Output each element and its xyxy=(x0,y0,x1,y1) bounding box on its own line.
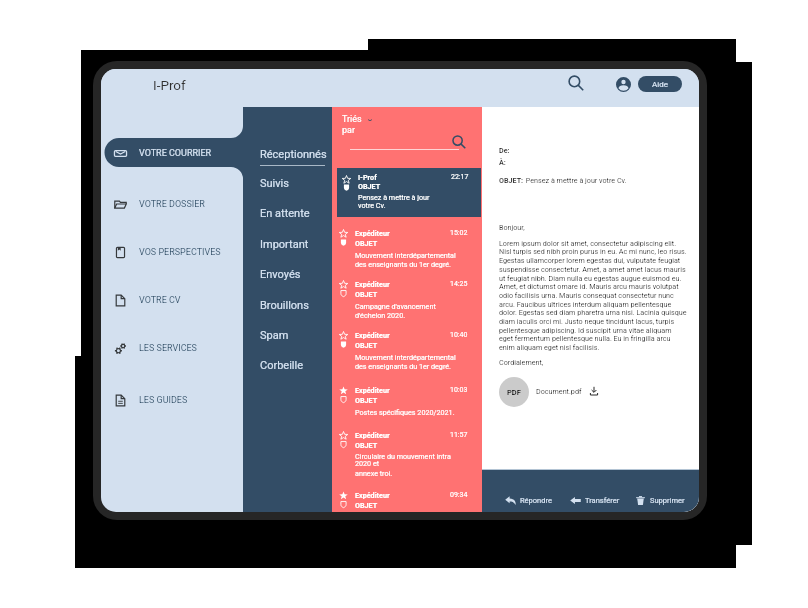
staticText: Réceptionnés xyxy=(260,148,327,161)
staticText: Postes spécifiques 2020/2021. xyxy=(355,408,455,416)
staticText: Important xyxy=(260,238,309,251)
staticText: VOTRE COURRIER xyxy=(139,148,212,159)
staticText: arcu. Faucibus ultrices interdum aliquam… xyxy=(499,300,672,308)
staticText: eget fermentum pellentesque nulla. Eu in… xyxy=(499,334,671,342)
staticText: LES GUIDES xyxy=(139,395,188,406)
button[interactable]: Triés xyxy=(340,112,376,136)
staticText: Suivis xyxy=(260,177,289,190)
button[interactable]: Expéditeur xyxy=(332,386,483,420)
button[interactable]: Expéditeur xyxy=(332,229,483,272)
staticText: Lorem ipsum dolor sit amet, consectetur … xyxy=(499,239,677,247)
staticText: diam iaculis orci mi. Justo neque tincid… xyxy=(499,317,675,325)
staticText: Document.pdf xyxy=(536,387,582,395)
staticText: d'échelon 2020. xyxy=(355,311,406,319)
button[interactable]: Brouillons xyxy=(243,290,332,320)
button[interactable]: Compte xyxy=(611,72,635,96)
button[interactable]: Rechercher xyxy=(564,71,588,95)
button[interactable]: Expéditeur xyxy=(332,280,483,323)
staticText: OBJET xyxy=(355,341,378,349)
button[interactable]: Expéditeur xyxy=(332,431,483,481)
staticText: pellentesque adipiscing. Id suscipit urn… xyxy=(499,326,672,334)
staticText: 09:34 xyxy=(450,491,468,499)
button[interactable]: Expéditeur xyxy=(332,491,483,512)
staticText: Aide xyxy=(652,80,668,89)
button[interactable]: Corbeille xyxy=(243,350,332,380)
staticText: LES SERVICES xyxy=(139,343,197,354)
staticText: Mouvement interdépartemental xyxy=(355,251,456,259)
button[interactable]: VOTRE DOSSIER xyxy=(105,190,243,219)
staticText: ut feugiat nibh. Diam nulla eu egestas a… xyxy=(499,274,682,282)
staticText: 22:17 xyxy=(451,173,469,181)
staticText: 14:25 xyxy=(450,280,468,288)
staticText: Brouillons xyxy=(260,299,309,312)
staticText: De: xyxy=(499,146,510,154)
staticText: OBJET xyxy=(355,290,378,298)
staticText: OBJET xyxy=(355,501,378,509)
staticText: 10:03 xyxy=(450,386,468,394)
staticText: Egestas ullamcorper lorem egestas dui, v… xyxy=(499,256,681,264)
button[interactable]: LES SERVICES xyxy=(105,334,243,363)
button[interactable]: En attente xyxy=(243,198,332,228)
staticText: OBJET xyxy=(358,182,381,190)
staticText: Expéditeur xyxy=(355,491,390,499)
button[interactable]: Supprimer xyxy=(635,490,685,510)
staticText: Triés xyxy=(342,114,362,125)
button[interactable]: Envoyés xyxy=(243,259,332,289)
staticText: VOTRE DOSSIER xyxy=(139,199,205,210)
button[interactable]: Télécharger xyxy=(584,381,604,401)
staticText: Campagne d'avancement xyxy=(355,302,436,310)
staticText: 2020 et xyxy=(355,459,380,467)
button[interactable]: Transférer xyxy=(570,490,620,510)
button[interactable]: VOTRE COURRIER xyxy=(105,139,243,168)
button[interactable]: LES GUIDES xyxy=(105,386,243,415)
button[interactable]: Suivis xyxy=(243,168,332,198)
button[interactable]: Important xyxy=(243,229,332,259)
button[interactable]: Aide xyxy=(638,76,682,92)
staticText: Expéditeur xyxy=(355,431,390,439)
button[interactable]: Rechercher un message xyxy=(448,131,468,151)
staticText: Cordialement, xyxy=(499,358,544,366)
staticText: I-Prof xyxy=(358,173,377,181)
staticText: enim aliquam eget nisl facilisis. xyxy=(499,343,600,351)
button[interactable]: I-Prof xyxy=(337,168,481,217)
staticText: annexe troi. xyxy=(355,469,393,477)
staticText: VOTRE CV xyxy=(139,295,181,306)
staticText: votre Cv. xyxy=(358,201,386,209)
staticText: I-Prof xyxy=(153,77,186,93)
staticText: Expéditeur xyxy=(355,386,390,394)
staticText: Nisl turpis sed nibh proin purus in eu. … xyxy=(499,247,687,255)
button[interactable]: Spam xyxy=(243,320,332,350)
staticText: des enseignants du 1er degré. xyxy=(355,362,451,370)
staticText: Pensez à mettre à jour xyxy=(358,193,430,201)
staticText: 15:02 xyxy=(450,229,468,237)
staticText: OBJET xyxy=(355,441,378,449)
staticText: Spam xyxy=(260,329,289,342)
staticText: Transférer xyxy=(585,496,620,505)
staticText: En attente xyxy=(260,207,310,220)
staticText: par xyxy=(342,125,355,136)
staticText: À: xyxy=(499,158,506,166)
button[interactable]: VOTRE CV xyxy=(105,286,243,315)
button[interactable]: Pièce jointe PDF xyxy=(499,377,529,407)
staticText: OBJET xyxy=(355,396,378,404)
staticText: dolor. Egestas sed diam pharetra urna ni… xyxy=(499,308,687,316)
staticText: suspendisse consectetur. Amet, a amet am… xyxy=(499,265,686,273)
staticText: odio facilisis urna. Mauris consequat co… xyxy=(499,291,674,299)
staticText: Envoyés xyxy=(260,268,301,281)
staticText: Expéditeur xyxy=(355,331,390,339)
staticText: OBJET xyxy=(355,239,378,247)
staticText: OBJET: xyxy=(499,176,524,184)
staticText: Corbeille xyxy=(260,359,304,372)
staticText: Répondre xyxy=(520,496,552,505)
staticText: des enseignants du 1er degré. xyxy=(355,260,451,268)
staticText: Expéditeur xyxy=(355,229,390,237)
staticText: Mouvement interdépartemental xyxy=(355,353,456,361)
staticText: Amet, et dictumst ornare id. Mauris arcu… xyxy=(499,282,679,290)
staticText: Circulaire du mouvement intra xyxy=(355,452,451,460)
staticText: VOS PERSPECTIVES xyxy=(139,247,221,258)
button[interactable]: VOS PERSPECTIVES xyxy=(105,238,243,267)
staticText: 10:40 xyxy=(450,331,468,339)
button[interactable]: Réceptionnés xyxy=(243,139,332,169)
button[interactable]: Expéditeur xyxy=(332,331,483,374)
button[interactable]: Répondre xyxy=(505,490,552,510)
